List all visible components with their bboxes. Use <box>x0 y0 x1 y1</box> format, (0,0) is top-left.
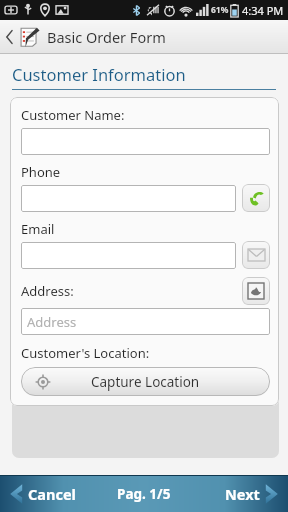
button[interactable]: Cancel <box>0 475 96 512</box>
staticText: Customer Information <box>12 63 186 85</box>
staticText: Customer's Location: <box>21 344 150 362</box>
staticText: Phone <box>21 163 61 181</box>
staticText: Next <box>225 484 260 504</box>
button[interactable]: Address <box>21 308 270 335</box>
staticText: Address: <box>21 282 74 300</box>
staticText: Email <box>21 220 55 238</box>
staticText: Capture Location <box>91 373 200 391</box>
button[interactable]: Capture Location <box>21 367 270 396</box>
button[interactable]: Email <box>242 241 270 269</box>
staticText: Customer Name: <box>21 106 125 124</box>
staticText: Pag. 1/5 <box>117 485 171 503</box>
staticText: Basic Order Form <box>47 27 166 47</box>
button[interactable] <box>21 128 270 155</box>
staticText: 4:34 PM <box>242 3 284 18</box>
staticText: 61% <box>211 4 229 16</box>
button[interactable]: Pick address on map <box>242 277 270 305</box>
staticText: Address <box>27 313 77 331</box>
button[interactable]: Next <box>192 475 288 512</box>
button[interactable]: Back <box>0 20 44 54</box>
staticText: Cancel <box>28 484 76 504</box>
button[interactable] <box>21 185 236 212</box>
button[interactable] <box>21 242 236 269</box>
button[interactable]: Call <box>242 184 270 212</box>
